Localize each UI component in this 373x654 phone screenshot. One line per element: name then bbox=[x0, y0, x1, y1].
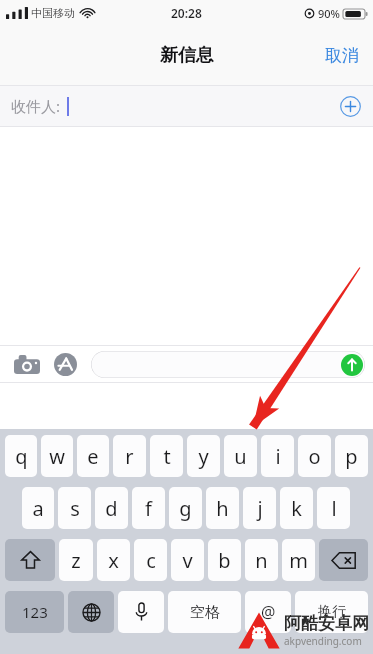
button[interactable]: s bbox=[58, 487, 91, 529]
staticText: i bbox=[275, 443, 281, 470]
button[interactable]: k bbox=[280, 487, 313, 529]
staticText: 取消 bbox=[325, 45, 359, 66]
staticText: b bbox=[218, 547, 231, 574]
staticText: 新信息 bbox=[160, 44, 214, 67]
staticText: 123 bbox=[22, 602, 48, 622]
staticText: f bbox=[145, 495, 152, 522]
button[interactable]: j bbox=[243, 487, 276, 529]
staticText: n bbox=[255, 547, 268, 574]
button[interactable]: Dictation bbox=[118, 591, 164, 633]
button[interactable]: a bbox=[22, 487, 54, 529]
button[interactable]: b bbox=[208, 539, 241, 581]
button[interactable]: Add contact bbox=[335, 91, 365, 121]
button[interactable]: y bbox=[187, 435, 220, 477]
button[interactable]: Camera bbox=[12, 349, 42, 379]
staticText: w bbox=[49, 443, 65, 470]
button[interactable]: i bbox=[261, 435, 294, 477]
button[interactable]: h bbox=[206, 487, 239, 529]
button[interactable]: o bbox=[298, 435, 331, 477]
button[interactable]: l bbox=[317, 487, 350, 529]
staticText: g bbox=[179, 495, 192, 522]
staticText: 空格 bbox=[190, 603, 220, 622]
button[interactable]: t bbox=[150, 435, 183, 477]
staticText: j bbox=[257, 495, 263, 522]
staticText: @ bbox=[261, 601, 276, 623]
staticText: k bbox=[291, 495, 302, 522]
staticText: 收件人: bbox=[11, 96, 61, 116]
button[interactable]: Return bbox=[295, 591, 368, 633]
staticText: y bbox=[198, 443, 209, 470]
button[interactable]: 空格 bbox=[168, 591, 241, 633]
staticText: h bbox=[216, 495, 229, 522]
staticText: l bbox=[331, 495, 337, 522]
staticText: 90% bbox=[318, 6, 340, 21]
staticText: akpvending.com bbox=[284, 634, 362, 648]
button[interactable]: c bbox=[134, 539, 167, 581]
button[interactable]: Switch language bbox=[68, 591, 114, 633]
staticText: p bbox=[345, 443, 358, 470]
button[interactable]: App Store bbox=[50, 349, 80, 379]
staticText: z bbox=[71, 547, 81, 574]
button[interactable]: Numbers bbox=[5, 591, 64, 633]
staticText: t bbox=[163, 443, 171, 470]
staticText: d bbox=[105, 495, 118, 522]
button[interactable]: Backspace bbox=[319, 539, 368, 581]
staticText: a bbox=[32, 495, 44, 522]
button[interactable]: v bbox=[171, 539, 204, 581]
button[interactable]: d bbox=[95, 487, 128, 529]
button[interactable]: z bbox=[59, 539, 93, 581]
button[interactable]: Send bbox=[341, 354, 363, 376]
button[interactable]: e bbox=[77, 435, 109, 477]
button[interactable]: 取消 bbox=[311, 35, 373, 76]
staticText: x bbox=[108, 547, 119, 574]
button[interactable]: Shift bbox=[5, 539, 55, 581]
staticText: o bbox=[308, 443, 321, 470]
staticText: v bbox=[182, 547, 193, 574]
staticText: r bbox=[125, 443, 134, 470]
staticText: s bbox=[70, 495, 80, 522]
button[interactable]: u bbox=[224, 435, 257, 477]
staticText: e bbox=[87, 443, 99, 470]
staticText: u bbox=[234, 443, 247, 470]
button[interactable]: m bbox=[282, 539, 315, 581]
button[interactable]: p bbox=[335, 435, 368, 477]
staticText: 20:28 bbox=[171, 5, 202, 21]
button[interactable]: x bbox=[97, 539, 130, 581]
staticText: 阿酷安卓网 bbox=[284, 613, 369, 634]
button[interactable]: q bbox=[5, 435, 37, 477]
button[interactable]: w bbox=[41, 435, 73, 477]
button[interactable]: Send bbox=[91, 351, 365, 378]
staticText: c bbox=[146, 547, 156, 574]
button[interactable]: g bbox=[169, 487, 202, 529]
staticText: q bbox=[15, 443, 28, 470]
button[interactable]: r bbox=[113, 435, 146, 477]
staticText: 换行 bbox=[318, 603, 346, 621]
staticText: 中国移动 bbox=[31, 6, 75, 20]
staticText: m bbox=[289, 547, 308, 574]
button[interactable]: @ bbox=[245, 591, 291, 633]
button[interactable]: n bbox=[245, 539, 278, 581]
button[interactable]: f bbox=[132, 487, 165, 529]
